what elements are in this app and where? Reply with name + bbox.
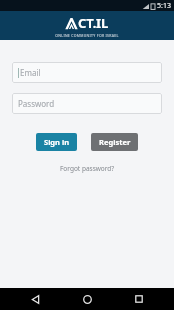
staticText: Register xyxy=(99,137,131,147)
staticText: Password xyxy=(18,98,55,109)
staticText: CT.IL xyxy=(78,14,109,32)
button[interactable]: Email xyxy=(12,62,162,83)
button[interactable]: Sign in xyxy=(36,133,77,151)
staticText: Email xyxy=(20,67,41,78)
staticText: 5:13 xyxy=(157,1,171,11)
button[interactable]: Register xyxy=(91,133,138,151)
staticText: Forgot password? xyxy=(60,164,115,173)
button[interactable]: Recent apps xyxy=(122,288,156,310)
button[interactable]: Back xyxy=(18,288,52,310)
staticText: Sign in xyxy=(44,137,70,147)
button[interactable]: Forgot password? xyxy=(56,162,119,175)
button[interactable]: Home xyxy=(70,288,104,310)
button[interactable]: Password xyxy=(12,93,162,114)
staticText: ONLINE COMMUNITY FOR ISRAEL xyxy=(55,33,119,38)
